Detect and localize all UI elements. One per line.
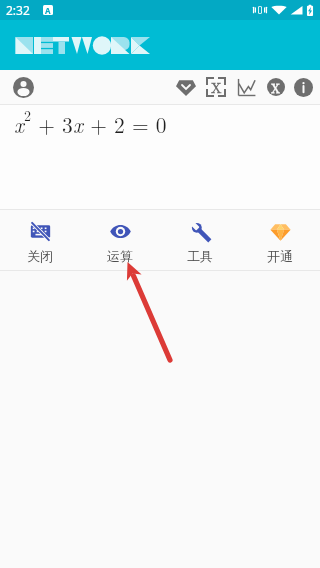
button[interactable]: Solve for x xyxy=(262,70,290,104)
staticText: x xyxy=(14,109,24,139)
staticText: 工具 xyxy=(187,248,213,264)
staticText: + 2 = 0 xyxy=(83,109,167,139)
button[interactable]: Premium xyxy=(172,70,200,104)
button[interactable]: 开通 xyxy=(240,210,320,270)
staticText: 开通 xyxy=(267,248,293,264)
button[interactable]: 关闭 xyxy=(0,210,80,270)
staticText: 运算 xyxy=(107,248,133,264)
staticText: x xyxy=(73,109,83,139)
staticText: X xyxy=(211,77,222,97)
staticText: A xyxy=(45,5,51,15)
button[interactable]: 工具 xyxy=(160,210,240,270)
staticText: 2 xyxy=(24,105,31,125)
staticText: + 3 xyxy=(31,109,73,139)
staticText: 关闭 xyxy=(27,248,53,264)
button[interactable]: Graph xyxy=(232,70,260,104)
button[interactable]: 运算 xyxy=(80,210,160,270)
staticText: X xyxy=(271,79,281,96)
staticText: 2:32 xyxy=(6,2,30,18)
button[interactable]: Account xyxy=(9,70,38,104)
button[interactable]: Variable xyxy=(202,70,230,104)
button[interactable]: Info xyxy=(289,70,317,104)
